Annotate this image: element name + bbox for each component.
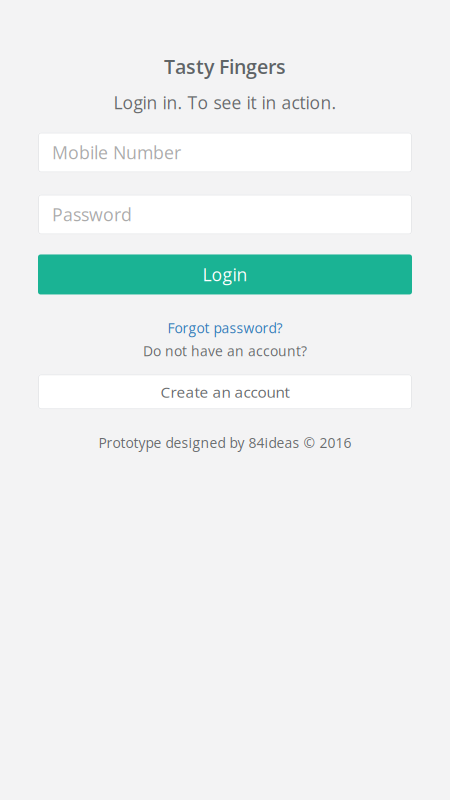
staticText: Tasty Fingers <box>164 53 286 80</box>
staticText: Login in. To see it in action. <box>113 91 336 114</box>
button[interactable]: Password <box>38 194 412 234</box>
staticText: Password <box>52 202 132 226</box>
button[interactable]: Forgot password? <box>163 316 286 339</box>
staticText: Login <box>202 262 247 286</box>
button[interactable]: Login <box>38 254 412 294</box>
staticText: Create an account <box>160 381 289 402</box>
staticText: Forgot password? <box>167 318 282 337</box>
staticText: Do not have an account? <box>143 341 307 360</box>
button[interactable]: Create an account <box>38 374 412 409</box>
staticText: Mobile Number <box>52 140 181 164</box>
staticText: Prototype designed by 84ideas © 2016 <box>98 433 351 452</box>
button[interactable]: Mobile Number <box>38 132 412 172</box>
